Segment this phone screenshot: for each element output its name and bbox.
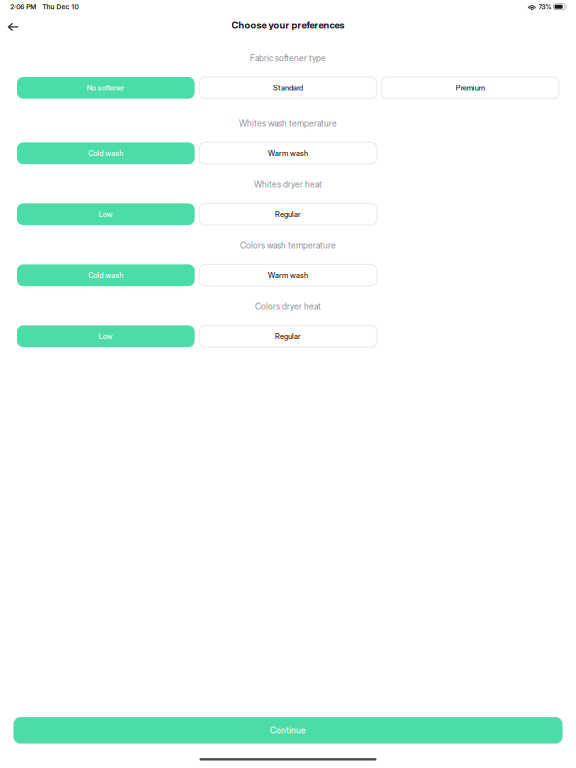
staticText: Whites wash temperature bbox=[239, 118, 337, 129]
staticText: 73% bbox=[538, 3, 551, 11]
staticText: Cold wash bbox=[88, 149, 123, 158]
staticText: Low bbox=[99, 332, 113, 341]
staticText: Continue bbox=[270, 725, 306, 735]
staticText: Low bbox=[99, 210, 113, 219]
staticText: Fabric softener type bbox=[250, 53, 326, 63]
staticText: Choose your preferences bbox=[231, 19, 344, 31]
staticText: 2:06 PM bbox=[10, 3, 36, 11]
button[interactable]: Regular bbox=[199, 203, 377, 225]
staticText: Premium bbox=[456, 83, 485, 92]
button[interactable]: Premium bbox=[381, 77, 559, 99]
button[interactable]: Cold wash bbox=[17, 142, 195, 164]
button[interactable]: Low bbox=[17, 325, 195, 347]
staticText: Warm wash bbox=[268, 149, 308, 158]
staticText: Warm wash bbox=[268, 271, 308, 280]
button[interactable]: Back bbox=[0, 15, 25, 34]
staticText: Standard bbox=[273, 83, 303, 92]
button[interactable]: Regular bbox=[199, 325, 377, 347]
button[interactable]: Warm wash bbox=[199, 264, 377, 286]
staticText: Colors dryer heat bbox=[255, 301, 321, 312]
button[interactable]: Cold wash bbox=[17, 264, 195, 286]
staticText: No softener bbox=[87, 83, 125, 92]
button[interactable]: Standard bbox=[199, 77, 377, 99]
staticText: Regular bbox=[275, 332, 301, 341]
staticText: Thu Dec 10 bbox=[42, 3, 78, 11]
staticText: Cold wash bbox=[88, 271, 123, 280]
staticText: Regular bbox=[275, 210, 301, 219]
button[interactable]: Continue bbox=[13, 717, 562, 744]
staticText: Colors wash temperature bbox=[240, 240, 336, 251]
button[interactable]: Low bbox=[17, 203, 195, 225]
staticText: Whites dryer heat bbox=[254, 179, 322, 190]
button[interactable]: Warm wash bbox=[199, 142, 377, 164]
button[interactable]: No softener bbox=[17, 77, 195, 99]
